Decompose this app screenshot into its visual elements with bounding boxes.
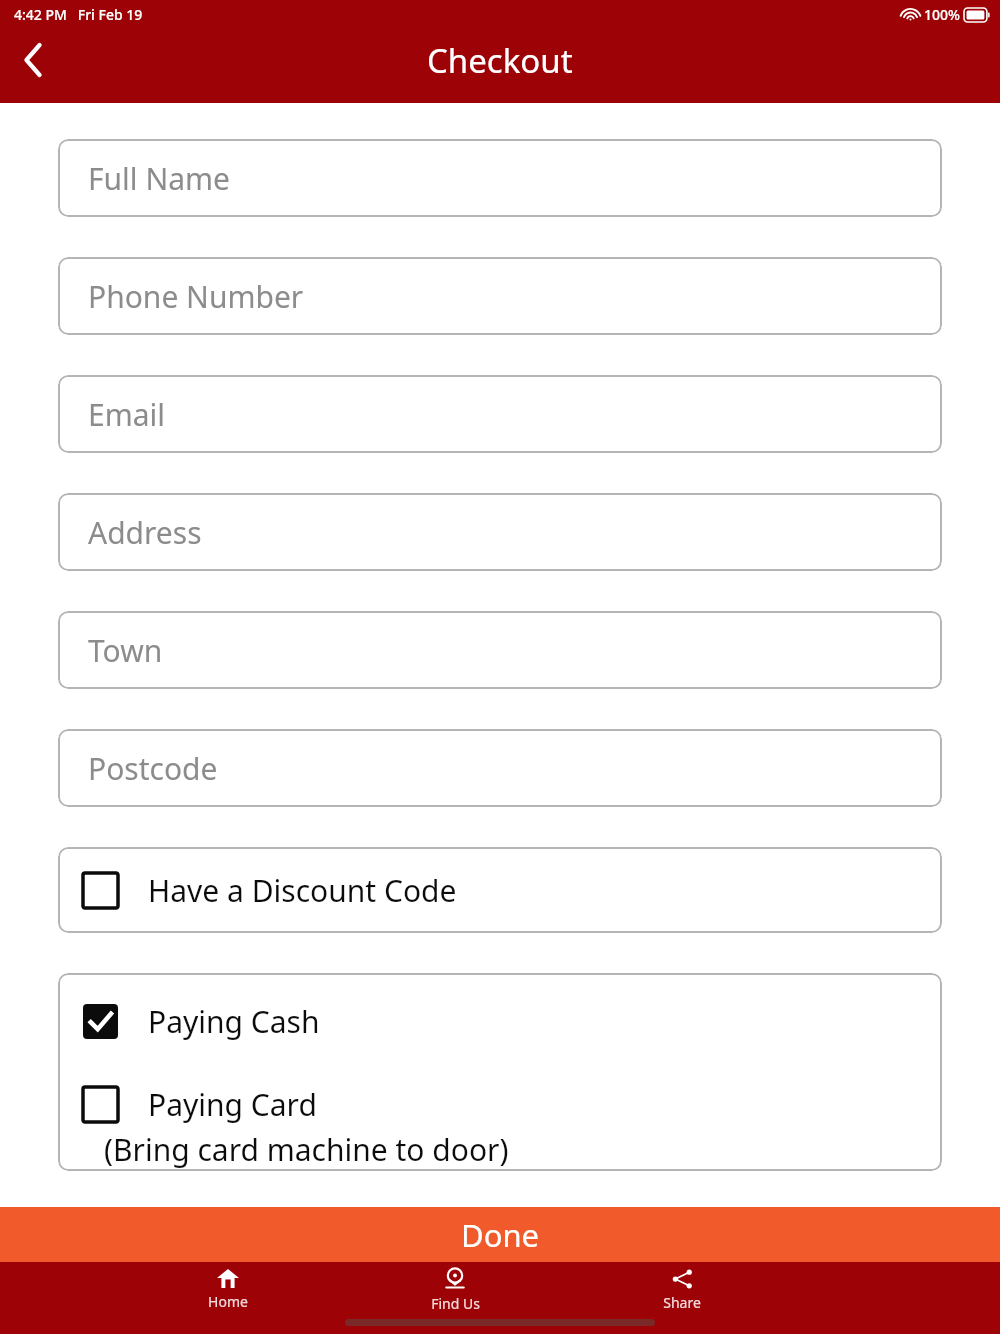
button[interactable]: Share	[637, 1269, 727, 1312]
staticText: Email	[88, 394, 166, 435]
staticText: Paying Card	[148, 1084, 317, 1125]
staticText: Postcode	[88, 748, 218, 789]
button[interactable]: Town	[58, 611, 942, 689]
staticText: Find Us	[431, 1294, 480, 1313]
button[interactable]: Done	[0, 1207, 1000, 1262]
button[interactable]: Paying Cash	[58, 1001, 942, 1042]
staticText: 4:42 PM Fri Feb 19	[14, 5, 143, 24]
other: Share	[672, 1269, 693, 1289]
button[interactable]: Find Us	[410, 1269, 500, 1313]
staticText: Address	[88, 512, 202, 553]
button[interactable]: Have a Discount Code	[58, 847, 942, 933]
button[interactable]: Paying Card	[58, 1084, 942, 1170]
staticText: Home	[208, 1292, 248, 1311]
other: Find Us	[445, 1269, 465, 1290]
staticText: Checkout	[427, 38, 573, 83]
button[interactable]: Home	[183, 1269, 273, 1311]
button[interactable]: Full Name	[58, 139, 942, 217]
staticText: 100%	[924, 5, 960, 24]
button[interactable]: Phone Number	[58, 257, 942, 335]
button[interactable]: Address	[58, 493, 942, 571]
staticText: Phone Number	[88, 276, 304, 317]
staticText: Done	[461, 1214, 540, 1256]
staticText: (Bring card machine to door)	[104, 1129, 509, 1170]
staticText: Full Name	[88, 158, 230, 199]
button[interactable]: Postcode	[58, 729, 942, 807]
staticText: Have a Discount Code	[148, 870, 457, 911]
other: Home	[217, 1269, 239, 1288]
staticText: Town	[88, 630, 163, 671]
staticText: Share	[663, 1293, 701, 1312]
button[interactable]: Email	[58, 375, 942, 453]
button[interactable]: Back	[6, 32, 62, 88]
staticText: Paying Cash	[148, 1001, 320, 1042]
